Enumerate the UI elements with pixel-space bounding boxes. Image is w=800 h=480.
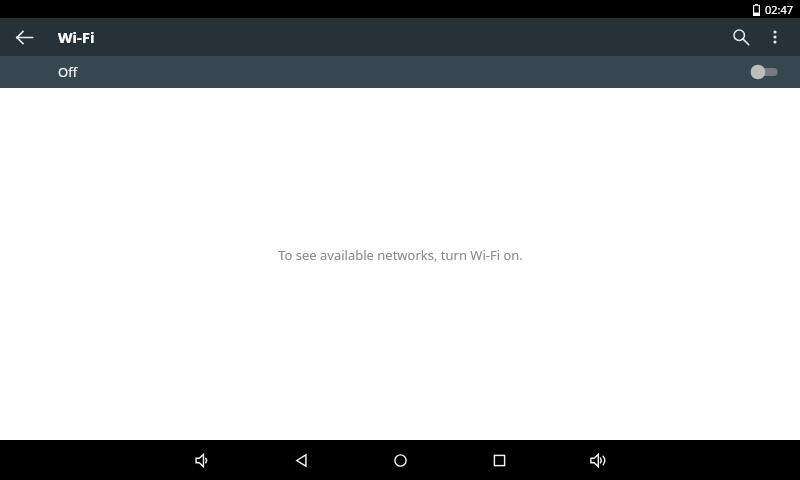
button[interactable]: Volume down bbox=[180, 440, 224, 480]
button[interactable]: More options bbox=[758, 20, 792, 54]
button[interactable]: Volume up bbox=[576, 440, 620, 480]
button[interactable]: Search bbox=[724, 20, 758, 54]
button[interactable]: Recents bbox=[477, 440, 521, 480]
button[interactable]: Back bbox=[8, 21, 40, 53]
staticText: Wi-Fi bbox=[58, 27, 95, 47]
button[interactable]: Off bbox=[0, 56, 800, 88]
staticText: 02:47 bbox=[765, 2, 794, 17]
button[interactable]: Wi-Fi toggle, off bbox=[750, 60, 784, 84]
staticText: Off bbox=[58, 63, 78, 81]
staticText: To see available networks, turn Wi-Fi on… bbox=[278, 246, 523, 264]
button[interactable]: Home bbox=[378, 440, 422, 480]
button[interactable]: Back bbox=[279, 440, 323, 480]
